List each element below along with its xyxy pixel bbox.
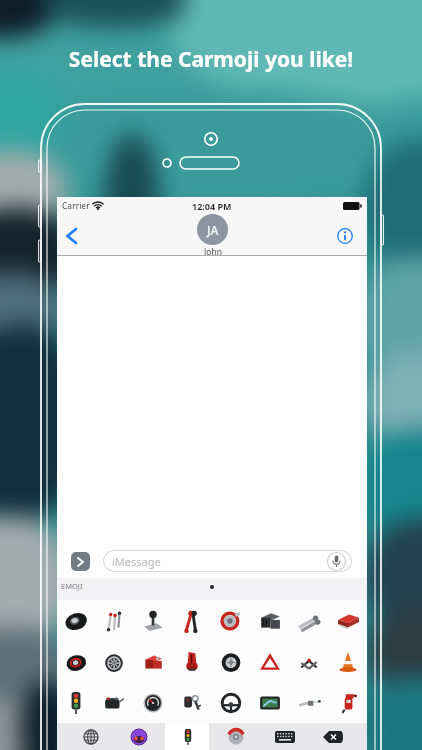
button[interactable] [289, 641, 328, 682]
button[interactable] [289, 600, 328, 641]
staticText: iMessage [112, 554, 161, 569]
button[interactable] [133, 682, 172, 723]
button[interactable] [57, 600, 95, 641]
staticText: Select the Carmoji you like! [0, 45, 422, 74]
button[interactable] [133, 600, 172, 641]
button[interactable] [57, 682, 95, 723]
button[interactable] [270, 723, 300, 750]
button[interactable]: iMessage [103, 550, 352, 572]
staticText: JA [207, 222, 219, 238]
button[interactable] [221, 723, 251, 750]
button[interactable] [71, 552, 90, 571]
button[interactable] [328, 682, 367, 723]
button[interactable] [124, 723, 154, 750]
button[interactable] [57, 641, 95, 682]
button[interactable] [172, 682, 211, 723]
button[interactable] [328, 641, 367, 682]
button[interactable] [172, 600, 211, 641]
button[interactable] [211, 641, 250, 682]
button[interactable] [289, 682, 328, 723]
button[interactable] [95, 600, 133, 641]
button[interactable] [250, 600, 289, 641]
button[interactable] [76, 723, 106, 750]
button[interactable] [95, 641, 133, 682]
button[interactable] [133, 641, 172, 682]
button[interactable] [250, 682, 289, 723]
button[interactable] [335, 226, 355, 246]
button[interactable] [62, 224, 80, 248]
button[interactable] [173, 723, 203, 750]
button[interactable]: JA [197, 214, 228, 255]
button[interactable] [328, 600, 367, 641]
staticText: 12:04 PM [192, 200, 232, 212]
button[interactable] [211, 682, 250, 723]
button[interactable] [172, 641, 211, 682]
button[interactable] [250, 641, 289, 682]
button[interactable] [211, 600, 250, 641]
button[interactable] [318, 723, 348, 750]
staticText: John [204, 246, 222, 255]
staticText: EMOJI [61, 581, 83, 591]
staticText: Carrier [62, 200, 90, 212]
button[interactable] [95, 682, 133, 723]
